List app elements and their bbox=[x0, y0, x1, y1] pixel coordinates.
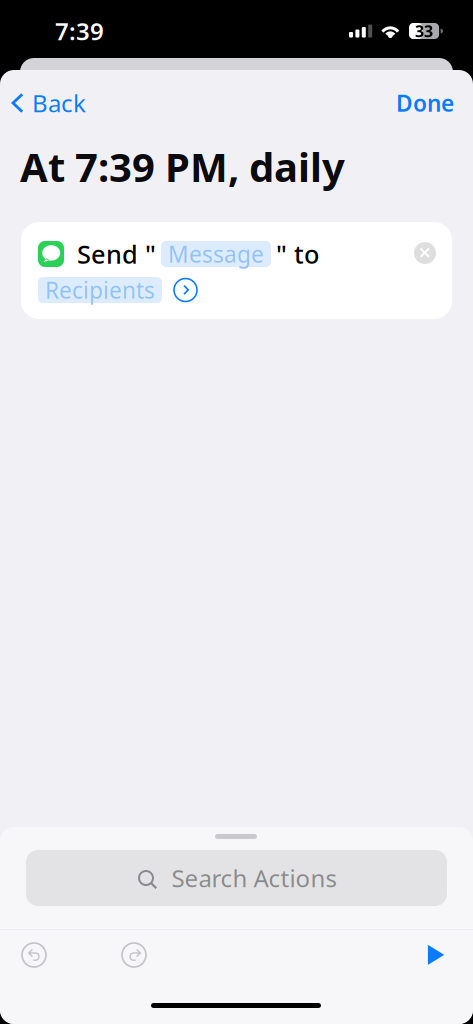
staticText: Back bbox=[32, 87, 86, 119]
staticText: Recipients bbox=[45, 275, 155, 305]
staticText: " to bbox=[276, 237, 319, 271]
button[interactable]: Run shortcut bbox=[427, 944, 445, 966]
button[interactable]: Back bbox=[0, 81, 98, 125]
staticText: 7:39 bbox=[55, 15, 104, 47]
staticText: Search Actions bbox=[171, 862, 336, 894]
button[interactable]: Remove action bbox=[414, 242, 436, 264]
staticText: Done bbox=[396, 88, 454, 118]
button[interactable]: Undo bbox=[17, 938, 51, 972]
button[interactable]: Redo bbox=[117, 938, 151, 972]
button[interactable]: Done bbox=[378, 81, 473, 125]
button[interactable]: Search Actions bbox=[26, 850, 447, 906]
button[interactable]: Send " bbox=[21, 222, 452, 319]
staticText: Send " bbox=[77, 237, 156, 271]
staticText: Message bbox=[168, 239, 264, 269]
staticText: 33 bbox=[415, 20, 433, 42]
staticText: At 7:39 PM, daily bbox=[20, 140, 345, 193]
